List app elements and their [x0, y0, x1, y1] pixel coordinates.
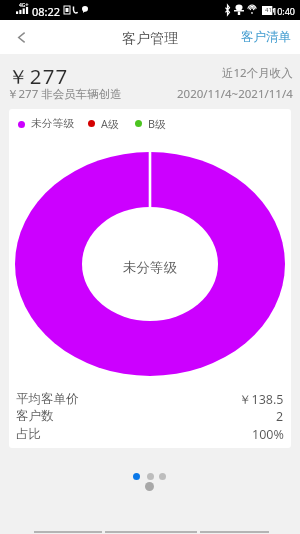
button[interactable]: A级 — [88, 116, 119, 131]
button[interactable]: B级 — [135, 116, 166, 131]
button[interactable]: 占比 — [9, 424, 291, 442]
staticText: 4G+ — [19, 2, 29, 9]
staticText: 客户数 — [16, 408, 54, 424]
staticText: 10:40 — [272, 5, 296, 17]
staticText: 41 — [265, 6, 272, 14]
staticText: 占比 — [16, 426, 41, 442]
staticText: A级 — [101, 116, 119, 131]
staticText: ￥138.5 — [239, 391, 284, 408]
staticText: 08:22 — [32, 4, 61, 19]
staticText: 客户管理 — [122, 30, 178, 48]
button[interactable]: 平均客单价 — [9, 389, 291, 407]
staticText: 平均客单价 — [16, 391, 79, 407]
staticText: 100% — [252, 426, 284, 443]
button[interactable]: Back — [0, 20, 42, 54]
staticText: 2020/11/4~2021/11/4 — [177, 86, 293, 102]
staticText: 未分等级 — [31, 117, 75, 131]
button[interactable]: 未分等级 — [18, 117, 75, 131]
staticText: 近12个月收入 — [222, 65, 293, 81]
button[interactable]: 客户数 — [9, 406, 291, 424]
staticText: 客户清单 — [241, 29, 291, 45]
staticText: ￥277 — [8, 62, 69, 90]
button[interactable]: 客户清单 — [229, 20, 300, 54]
staticText: 未分等级 — [123, 259, 177, 276]
staticText: 2 — [276, 408, 284, 425]
staticText: ￥277 非会员车辆创造 — [7, 86, 122, 102]
staticText: B级 — [148, 116, 166, 131]
